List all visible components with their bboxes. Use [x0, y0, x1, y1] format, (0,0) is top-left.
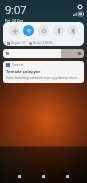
- button[interactable]: [3, 49, 84, 58]
- staticText: Bugün: 30: [11, 41, 26, 45]
- button[interactable]: Airplane mode: [9, 25, 20, 36]
- staticText: Daha fazla bilgi edinmek veya uygulamayı…: [6, 76, 81, 80]
- button[interactable]: Wi-Fi: [23, 25, 34, 36]
- button[interactable]: Back: [15, 172, 24, 181]
- staticText: Temizle: [12, 63, 24, 67]
- button[interactable]: Brightness: [38, 25, 49, 36]
- button[interactable]: Flashlight: [53, 25, 64, 36]
- staticText: Pzt, 24 Oca: [5, 18, 24, 22]
- staticText: Bu ay: 4,50GB: [33, 41, 53, 45]
- staticText: 9:07: [5, 2, 27, 17]
- staticText: Temizle çalışıyor: [6, 69, 41, 75]
- button[interactable]: Temizle: [3, 61, 84, 83]
- button[interactable]: Home: [39, 172, 48, 181]
- button[interactable]: Recents: [63, 172, 72, 181]
- button[interactable]: Bluetooth: [67, 25, 78, 36]
- button[interactable]: Settings: [76, 3, 83, 10]
